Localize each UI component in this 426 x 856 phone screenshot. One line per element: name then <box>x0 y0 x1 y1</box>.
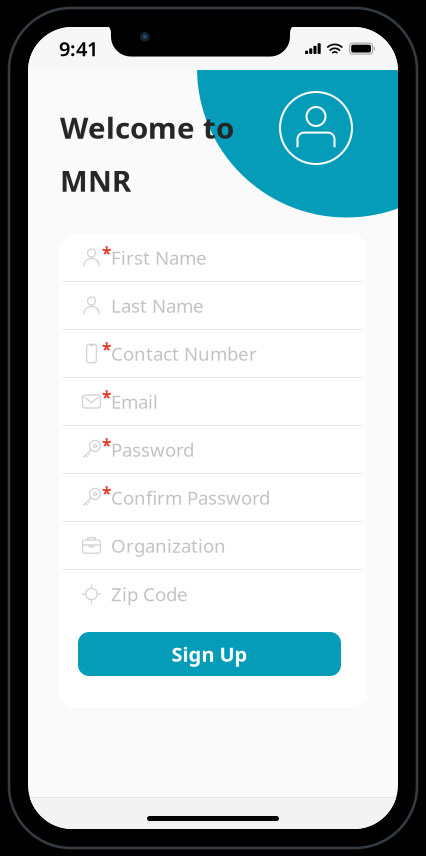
staticText: * <box>102 338 111 361</box>
staticText: Sign Up <box>171 641 247 667</box>
staticText: Zip Code <box>111 582 188 606</box>
staticText: Contact Number <box>111 341 257 366</box>
staticText: * <box>102 242 111 265</box>
button[interactable]: Zip Code <box>59 570 367 618</box>
staticText: * <box>102 482 111 505</box>
staticText: * <box>102 386 111 409</box>
staticText: 9:41 <box>59 35 98 62</box>
staticText: Organization <box>111 533 226 558</box>
button[interactable]: Sign Up <box>78 632 341 676</box>
button[interactable]: * <box>59 234 367 282</box>
button[interactable]: * <box>59 330 367 378</box>
staticText: First Name <box>111 245 207 270</box>
staticText: MNR <box>60 161 131 200</box>
staticText: Confirm Password <box>111 485 270 510</box>
staticText: Password <box>111 437 194 462</box>
button[interactable]: Last Name <box>59 282 367 330</box>
button[interactable]: Organization <box>59 522 367 570</box>
staticText: Email <box>111 389 158 414</box>
button[interactable]: * <box>59 474 367 522</box>
staticText: Last Name <box>111 293 204 318</box>
staticText: Welcome to <box>60 108 234 147</box>
button[interactable]: * <box>59 426 367 474</box>
staticText: * <box>102 434 111 457</box>
button[interactable]: * <box>59 378 367 426</box>
